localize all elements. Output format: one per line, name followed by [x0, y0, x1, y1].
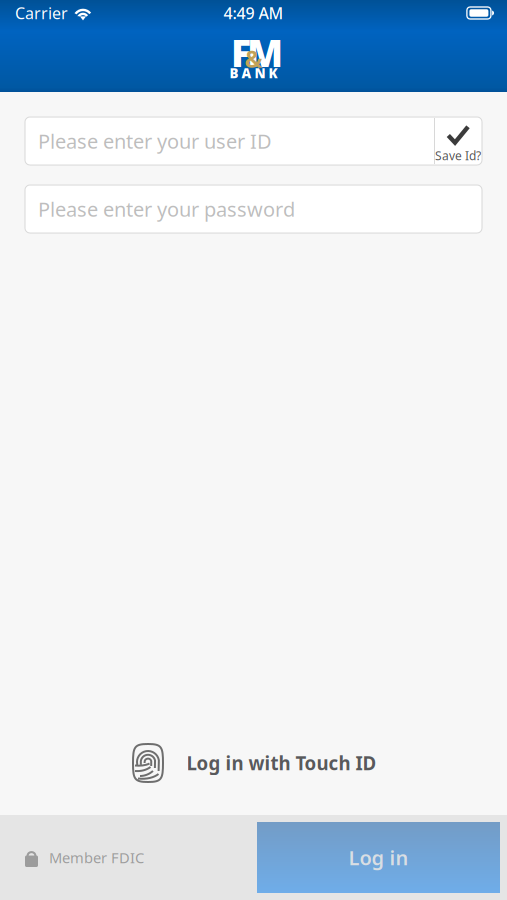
staticText: Please enter your user ID: [38, 128, 272, 154]
staticText: 4:49 AM: [223, 2, 283, 24]
staticText: Log in with Touch ID: [186, 751, 376, 775]
staticText: Member FDIC: [49, 848, 144, 867]
staticText: B A N K: [229, 64, 277, 82]
staticText: Carrier: [15, 2, 68, 24]
staticText: Log in: [348, 844, 408, 871]
staticText: Save Id?: [435, 147, 481, 163]
button[interactable]: Log in with Touch ID: [0, 735, 507, 791]
button[interactable]: Log in: [257, 822, 500, 893]
button[interactable]: Save Id?: [434, 118, 482, 164]
staticText: Please enter your password: [38, 196, 295, 222]
staticText: F: [231, 28, 251, 77]
staticText: &: [244, 43, 262, 74]
staticText: M: [247, 28, 283, 77]
